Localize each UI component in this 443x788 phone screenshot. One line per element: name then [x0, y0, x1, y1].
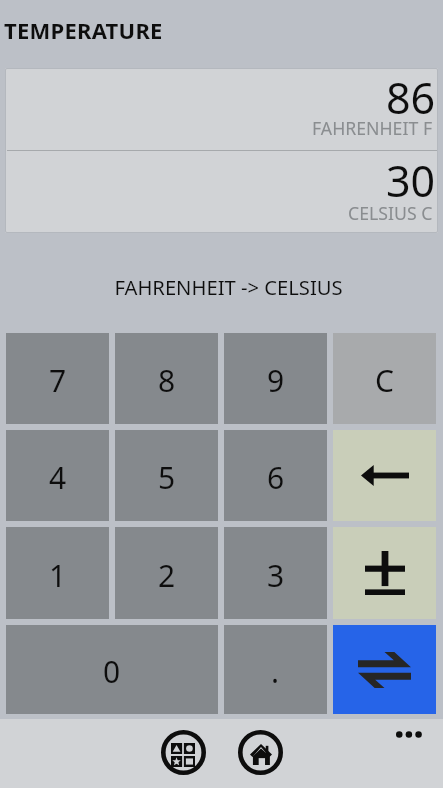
staticText: 3: [267, 555, 285, 596]
staticText: 4: [49, 457, 67, 498]
staticText: 6: [267, 457, 285, 498]
staticText: FAHRENHEIT -> CELSIUS: [7, 273, 443, 301]
button[interactable]: Swap units: [333, 625, 436, 714]
button[interactable]: 0: [6, 625, 218, 714]
button[interactable]: 5: [115, 430, 218, 521]
button[interactable]: 3: [224, 527, 327, 619]
staticText: 7: [49, 360, 67, 401]
staticText: 2: [158, 555, 176, 596]
button[interactable]: Categories: [161, 730, 206, 775]
button[interactable]: 4: [6, 430, 109, 521]
staticText: 1: [49, 555, 67, 596]
staticText: 0: [103, 651, 121, 692]
staticText: CELSIUS C: [348, 201, 433, 225]
button[interactable]: 6: [224, 430, 327, 521]
button[interactable]: 2: [115, 527, 218, 619]
button[interactable]: More options: [385, 719, 435, 749]
button[interactable]: Backspace: [333, 430, 436, 521]
staticText: 86: [386, 68, 436, 127]
button[interactable]: Home: [238, 730, 283, 775]
staticText: 9: [267, 360, 285, 401]
button[interactable]: 7: [6, 333, 109, 424]
button[interactable]: 1: [6, 527, 109, 619]
staticText: 30: [386, 151, 436, 210]
staticText: FAHRENHEIT F: [312, 116, 433, 140]
button[interactable]: C: [333, 333, 436, 424]
staticText: 5: [158, 457, 176, 498]
staticText: 8: [158, 360, 176, 401]
button[interactable]: Plus minus: [333, 527, 436, 619]
staticText: .: [271, 651, 280, 692]
staticText: C: [375, 360, 394, 401]
button[interactable]: 9: [224, 333, 327, 424]
button[interactable]: 8: [115, 333, 218, 424]
staticText: TEMPERATURE: [4, 15, 163, 45]
button[interactable]: .: [224, 625, 327, 714]
